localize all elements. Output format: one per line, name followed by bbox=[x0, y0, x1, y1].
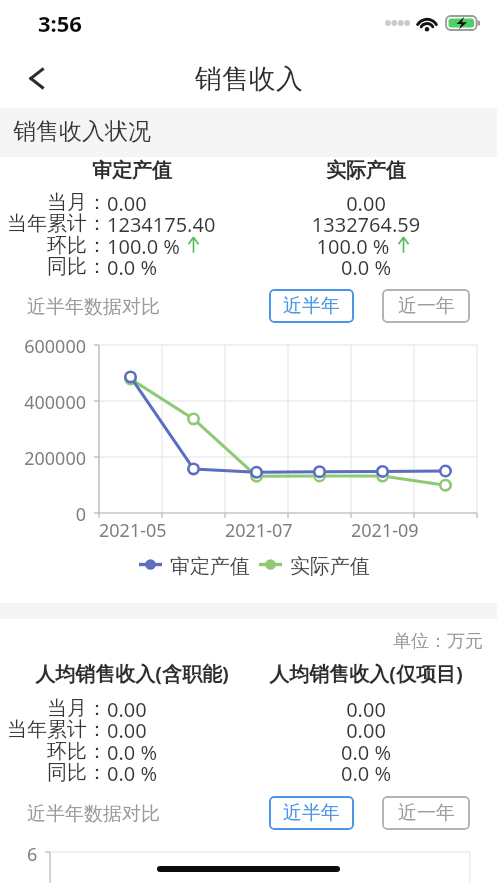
staticText: 近半年数据对比 bbox=[27, 802, 160, 826]
staticText: 100.0 % bbox=[107, 233, 180, 260]
staticText: 0.00 bbox=[107, 190, 147, 217]
staticText: 0.0 % bbox=[107, 254, 158, 281]
staticText: 同比： bbox=[0, 254, 107, 279]
staticText: 0.00 bbox=[241, 190, 491, 217]
staticText: 近半年 bbox=[283, 801, 340, 825]
staticText: 人均销售收入(仅项目) bbox=[241, 660, 491, 687]
staticText: 单位：万元 bbox=[0, 630, 483, 653]
staticText: 当年累计： bbox=[0, 717, 107, 742]
staticText: 当年累计： bbox=[0, 211, 107, 236]
staticText: 1234175.40 bbox=[107, 211, 216, 238]
staticText: 当月： bbox=[0, 696, 107, 721]
staticText: 0 bbox=[0, 502, 86, 527]
staticText: 2021-09 bbox=[351, 518, 419, 543]
staticText: 3:56 bbox=[38, 8, 82, 38]
staticText: 0.0 % bbox=[241, 254, 491, 281]
staticText: 审定产值 bbox=[170, 554, 250, 579]
staticText: 400000 bbox=[0, 390, 86, 415]
staticText: 0.00 bbox=[241, 696, 491, 723]
staticText: 6 bbox=[27, 842, 38, 867]
staticText: 销售收入状况 bbox=[13, 117, 151, 146]
staticText: 近一年 bbox=[398, 294, 455, 318]
staticText: 0.0 % bbox=[107, 739, 158, 766]
button[interactable]: 近半年 bbox=[269, 289, 354, 323]
staticText: 200000 bbox=[0, 446, 86, 471]
staticText: 0.0 % bbox=[241, 760, 491, 787]
staticText: 同比： bbox=[0, 760, 107, 785]
staticText: 0.00 bbox=[241, 717, 491, 744]
staticText: 0.00 bbox=[107, 696, 147, 723]
staticText: 2021-07 bbox=[225, 518, 293, 543]
staticText: 0.0 % bbox=[241, 739, 491, 766]
staticText: 环比： bbox=[0, 233, 107, 258]
staticText: 100.0 % bbox=[228, 233, 478, 260]
staticText: 实际产值 bbox=[241, 158, 491, 183]
staticText: 0.00 bbox=[107, 717, 147, 744]
staticText: 销售收入 bbox=[195, 62, 303, 96]
button[interactable]: 近一年 bbox=[382, 796, 470, 830]
button[interactable]: 近半年 bbox=[269, 796, 354, 830]
staticText: 环比： bbox=[0, 739, 107, 764]
staticText: 1332764.59 bbox=[241, 211, 491, 238]
staticText: 人均销售收入(含职能) bbox=[7, 660, 257, 687]
staticText: 审定产值 bbox=[7, 158, 257, 183]
button[interactable]: 近一年 bbox=[382, 289, 470, 323]
staticText: 2021-05 bbox=[99, 518, 167, 543]
staticText: 0.0 % bbox=[107, 760, 158, 787]
staticText: 当月： bbox=[0, 190, 107, 215]
staticText: 近一年 bbox=[398, 801, 455, 825]
staticText: 近半年数据对比 bbox=[27, 295, 160, 319]
staticText: 近半年 bbox=[283, 294, 340, 318]
staticText: 实际产值 bbox=[290, 554, 370, 579]
button[interactable]: Back bbox=[8, 50, 64, 106]
staticText: 600000 bbox=[0, 334, 86, 359]
